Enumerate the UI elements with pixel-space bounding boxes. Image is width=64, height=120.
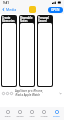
staticText: 9:41 — [3, 1, 9, 5]
staticText: Shareable Notes — [20, 16, 34, 22]
button[interactable]: Today — [3, 110, 12, 118]
staticText: Apps — [29, 115, 35, 118]
button[interactable]: Personal Record — [37, 15, 53, 87]
button[interactable]: Create Memories — [1, 15, 17, 87]
staticText: Games — [16, 115, 24, 118]
staticText: Today — [4, 115, 11, 118]
staticText: Media — [6, 7, 17, 12]
staticText: OPEN — [51, 8, 60, 12]
button[interactable]: Apps — [28, 110, 36, 118]
staticText: Create Memories — [2, 16, 16, 22]
button[interactable]: Search — [52, 110, 61, 118]
button[interactable]: Shareable Notes — [19, 15, 35, 87]
staticText: Search — [53, 115, 60, 118]
button[interactable]: Games — [15, 110, 25, 118]
button[interactable]: OPEN — [48, 7, 63, 13]
staticText: Personal Record — [38, 16, 52, 22]
staticText: AppStore pro iPhone, iPad a Apple Watch — [15, 89, 43, 97]
button[interactable]: Arcade — [39, 110, 49, 118]
staticText: Arcade — [40, 115, 48, 118]
button[interactable]: Media — [1, 7, 18, 12]
button[interactable]: AppStore pro iPhone, iPad a Apple Watch — [0, 89, 64, 97]
